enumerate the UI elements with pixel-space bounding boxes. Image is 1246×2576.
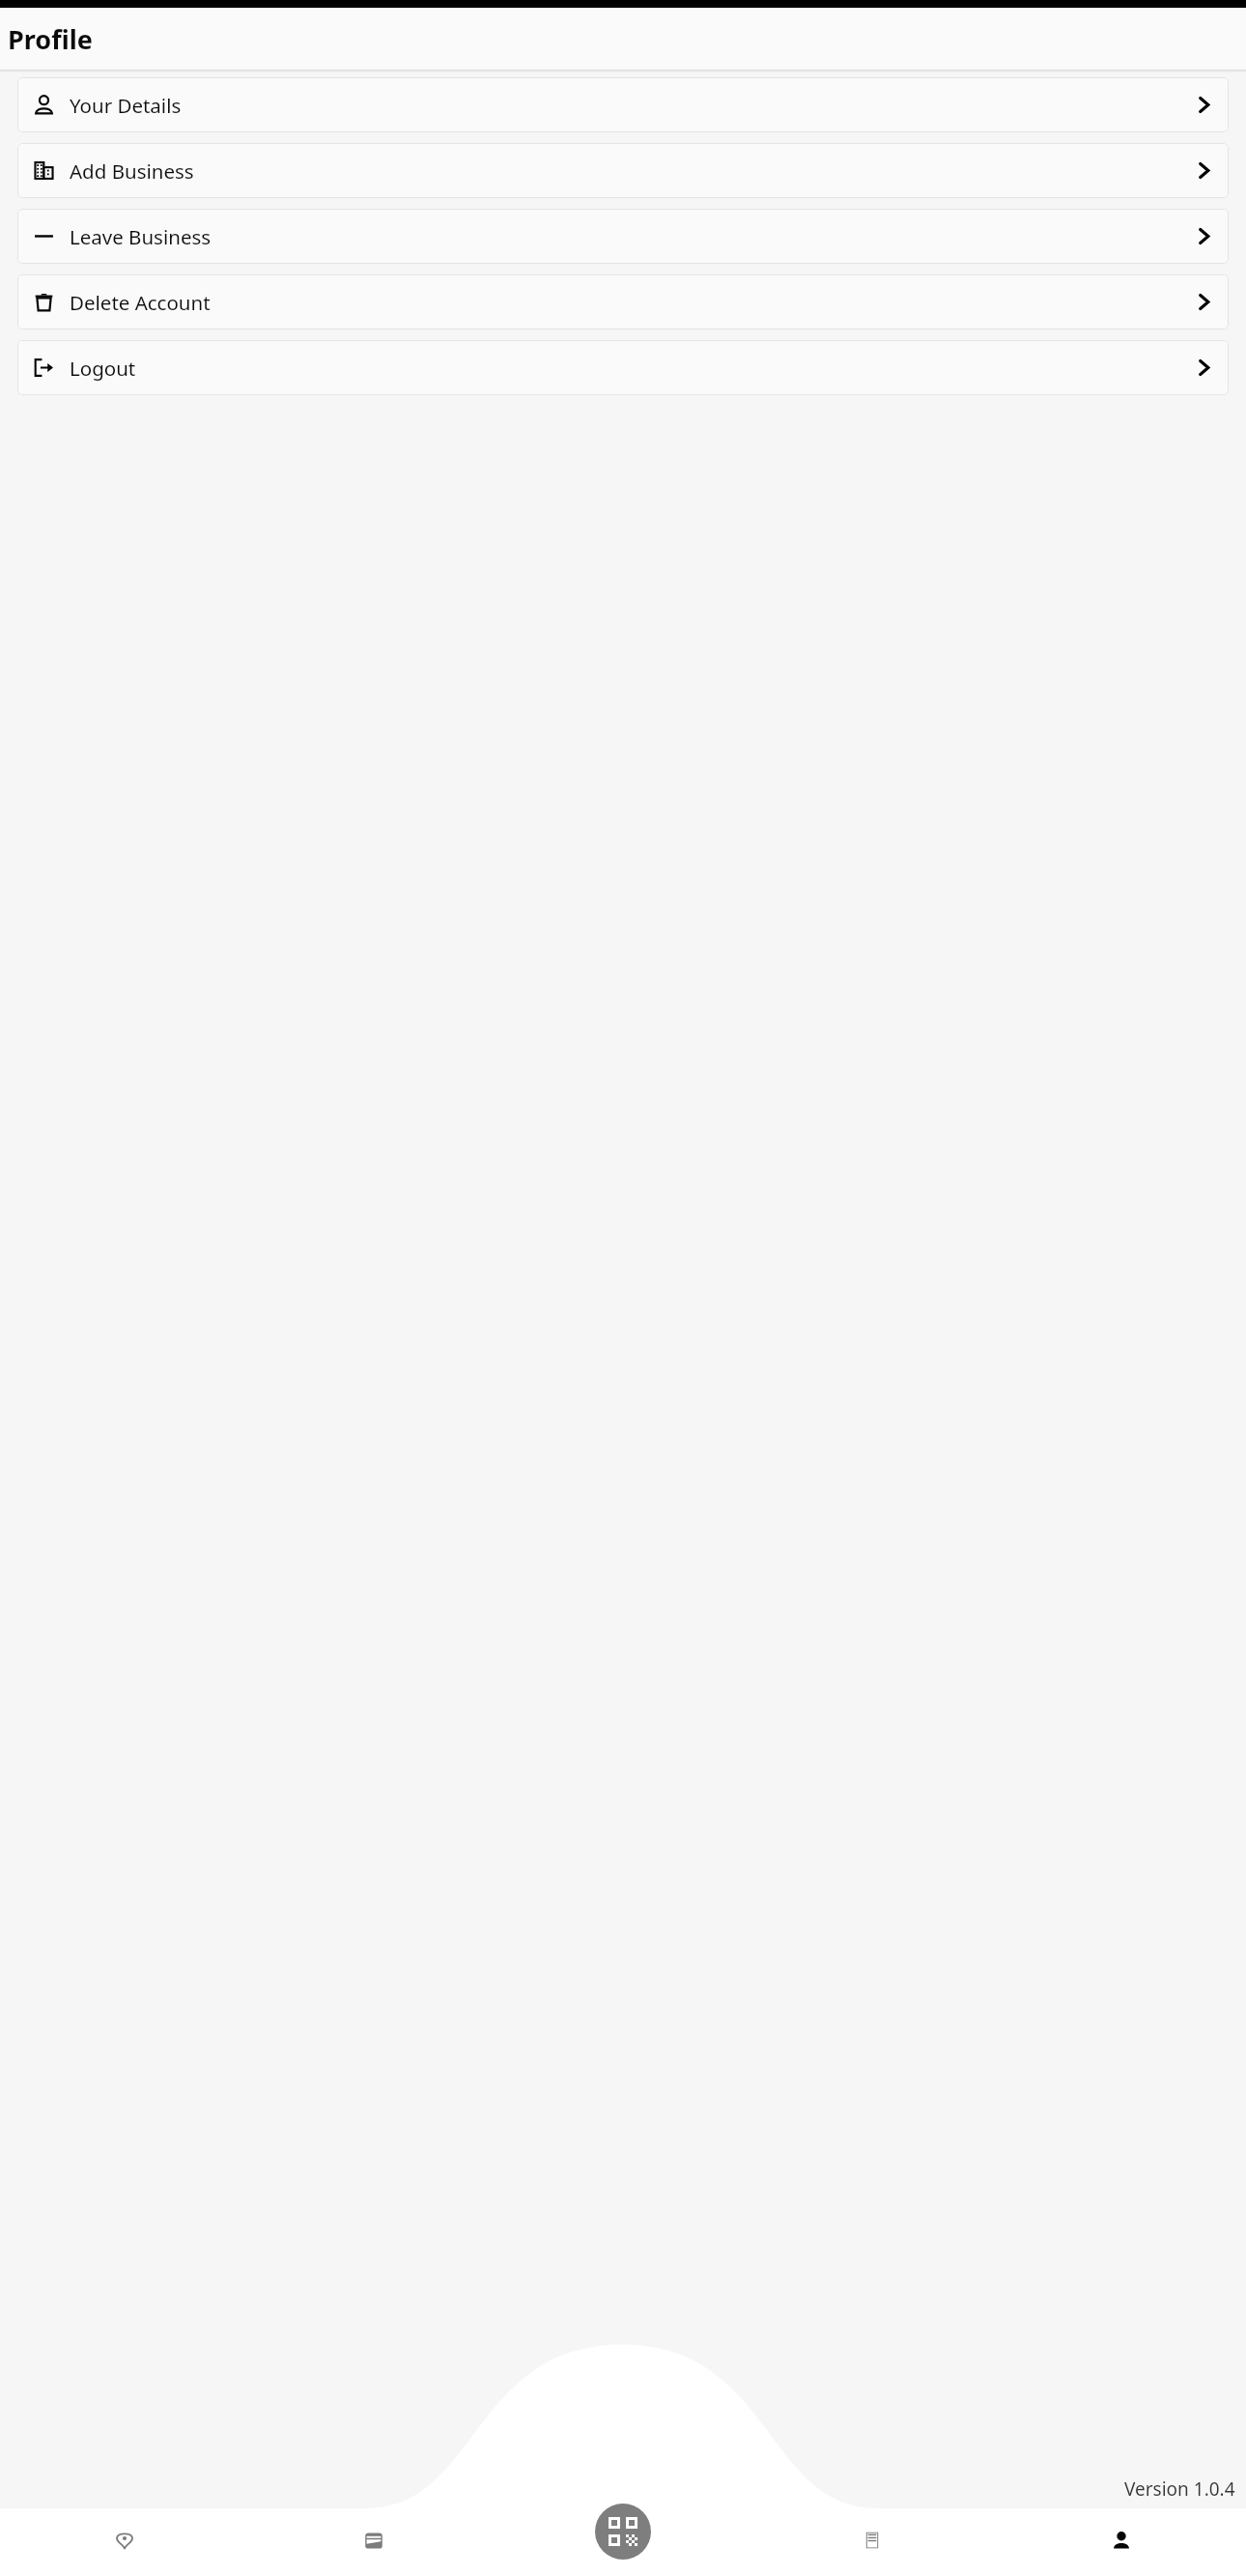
staticText: Add Business — [70, 157, 194, 185]
button[interactable]: Scan QR code — [595, 2504, 651, 2560]
button[interactable]: Profile — [997, 2504, 1246, 2576]
staticText: Version 1.0.4 — [1124, 2476, 1235, 2502]
button[interactable]: Add Business — [17, 143, 1229, 198]
staticText: Delete Account — [70, 289, 211, 316]
button[interactable]: Wallet — [249, 2504, 498, 2576]
staticText: Leave Business — [70, 223, 212, 250]
button[interactable]: Logout — [17, 340, 1229, 395]
button[interactable]: Leave Business — [17, 209, 1229, 264]
button[interactable]: Map — [0, 2504, 249, 2576]
button[interactable]: Receipts — [748, 2504, 997, 2576]
button[interactable]: Your Details — [17, 77, 1229, 132]
button[interactable]: Delete Account — [17, 274, 1229, 329]
staticText: Logout — [70, 355, 136, 382]
staticText: Your Details — [70, 92, 182, 119]
staticText: Profile — [8, 21, 93, 57]
